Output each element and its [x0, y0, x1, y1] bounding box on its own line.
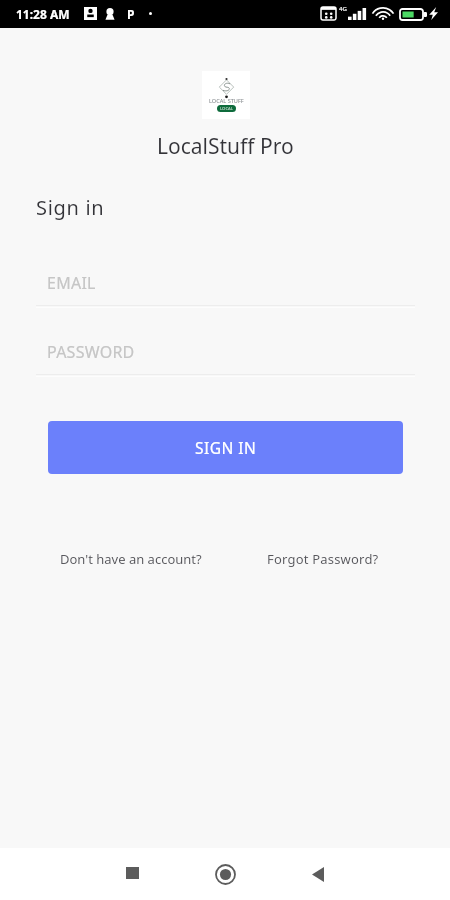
staticText: EMAIL — [47, 272, 96, 294]
staticText: P — [127, 6, 135, 22]
staticText: 4G — [339, 5, 347, 13]
button[interactable]: Don't have an account? — [60, 550, 202, 568]
button[interactable]: Forgot Password? — [267, 550, 379, 568]
staticText: LOCAL STUFF — [209, 97, 244, 105]
button[interactable]: Home — [201, 850, 249, 898]
staticText: 11:28 AM — [16, 6, 70, 22]
staticText: LOCAL — [220, 106, 233, 112]
button[interactable]: Recent apps — [108, 849, 156, 897]
staticText: Don't have an account? — [60, 550, 202, 568]
button[interactable]: PASSWORD — [36, 329, 415, 376]
staticText: PASSWORD — [47, 341, 135, 363]
staticText: Sign in — [36, 194, 105, 221]
button[interactable]: EMAIL — [36, 260, 415, 307]
staticText: SIGN IN — [195, 437, 257, 458]
staticText: Forgot Password? — [267, 550, 379, 568]
staticText: LocalStuff Pro — [157, 132, 294, 161]
button[interactable]: SIGN IN — [48, 421, 403, 474]
button[interactable]: Back — [294, 850, 342, 898]
